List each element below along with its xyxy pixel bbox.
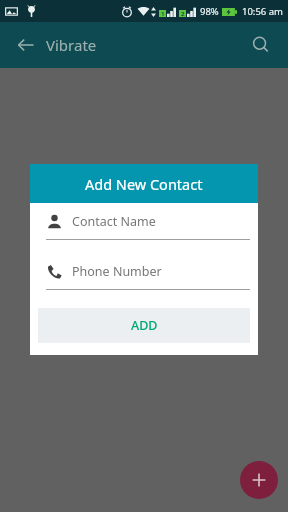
staticText: 2 (181, 10, 185, 17)
staticText: 10:56 am (242, 5, 283, 18)
staticText: Contact Name (72, 213, 156, 230)
button[interactable]: Search (246, 30, 276, 60)
staticText: 98% (200, 5, 219, 18)
button[interactable]: ADD (38, 308, 250, 343)
button[interactable]: Add (240, 461, 278, 499)
staticText: Phone Number (72, 263, 162, 280)
staticText: 1 (161, 10, 165, 17)
button[interactable]: Phone Number (46, 253, 250, 303)
button[interactable]: Back (12, 31, 40, 59)
staticText: Add New Contact (85, 174, 203, 194)
button[interactable]: Contact Name (46, 203, 250, 253)
staticText: ADD (131, 317, 158, 334)
staticText: Vibrate (46, 35, 97, 55)
